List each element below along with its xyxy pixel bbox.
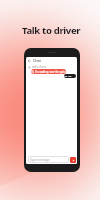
staticText: Talk to driver [22,24,81,37]
staticText: Chat [33,58,41,63]
button[interactable]: Hi, I'm waiting near the gate [31,69,66,74]
button[interactable]: Type a message [28,156,69,163]
staticText: radio check [32,65,46,69]
button[interactable]: On my way [64,74,76,78]
staticText: On my way [64,74,76,78]
staticText: Type a message [30,158,50,162]
other: Back [27,59,31,63]
staticText: Hi, I'm waiting near the gate [31,70,66,74]
button[interactable]: Send [70,157,76,163]
button[interactable]: Back [26,57,77,64]
